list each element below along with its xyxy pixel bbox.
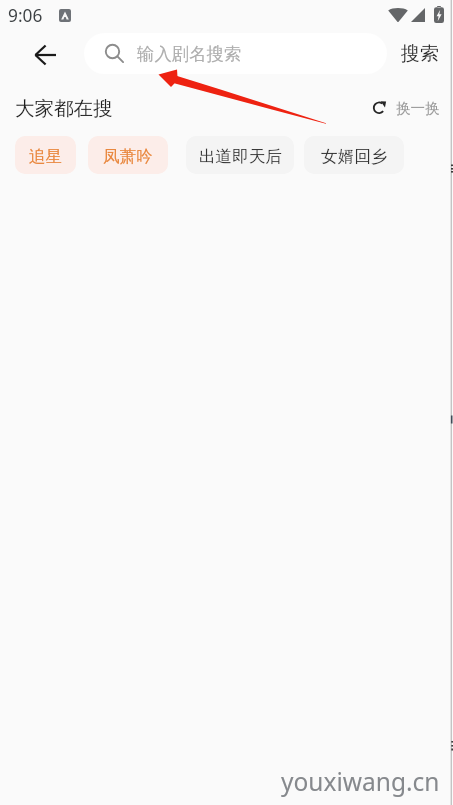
button[interactable]: 女婿回乡 bbox=[304, 136, 404, 174]
staticText: 凤萧吟 bbox=[103, 146, 153, 167]
staticText: 大家都在搜 bbox=[15, 96, 113, 121]
button[interactable]: 凤萧吟 bbox=[88, 136, 168, 174]
staticText: 搜索 bbox=[401, 42, 439, 66]
button[interactable]: 输入剧名搜索 bbox=[84, 33, 387, 74]
staticText: 输入剧名搜索 bbox=[137, 43, 242, 65]
button[interactable]: 搜索 bbox=[390, 33, 448, 74]
button[interactable]: 追星 bbox=[15, 136, 76, 174]
staticText: 出道即天后 bbox=[199, 146, 282, 167]
staticText: 9:06 bbox=[8, 4, 43, 28]
staticText: 追星 bbox=[29, 146, 63, 167]
staticText: youxiwang.cn bbox=[281, 765, 440, 798]
button[interactable]: 出道即天后 bbox=[186, 136, 294, 174]
button[interactable]: 换一换 bbox=[373, 99, 440, 117]
staticText: 换一换 bbox=[396, 99, 440, 117]
button[interactable]: Back bbox=[23, 33, 67, 76]
staticText: 女婿回乡 bbox=[321, 146, 388, 167]
